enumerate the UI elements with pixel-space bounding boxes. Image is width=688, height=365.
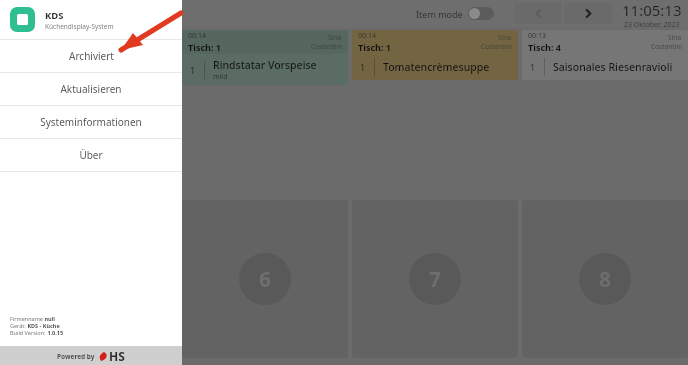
staticText: Aktualisieren	[60, 82, 122, 96]
staticText: Costantini	[311, 42, 342, 51]
staticText: Rindstatar Vorspeise	[213, 58, 317, 72]
staticText: Firmenname	[10, 315, 43, 322]
staticText: 1	[360, 61, 366, 73]
button[interactable]: Aktualisieren	[0, 73, 182, 105]
staticText: 8	[599, 265, 612, 294]
staticText: 1	[530, 61, 536, 73]
button[interactable]: Über	[0, 139, 182, 171]
staticText: 00:14	[188, 31, 206, 41]
button[interactable]: Next	[564, 3, 612, 24]
staticText: mild	[213, 72, 228, 82]
staticText: HS	[109, 348, 125, 364]
staticText: 1.0.15	[46, 329, 64, 336]
staticText: Tisch: 4	[528, 41, 561, 53]
staticText: KDS - Küche	[26, 322, 60, 329]
staticText: Systeminformationen	[40, 115, 142, 129]
button[interactable]: 00:14	[352, 30, 518, 195]
button[interactable]: 00:13	[522, 30, 688, 195]
staticText: 1	[190, 64, 196, 76]
staticText: Costantini	[481, 42, 512, 51]
staticText: 11:05:13	[622, 0, 682, 20]
staticText: Über	[79, 148, 103, 162]
staticText: Tisch: 1	[358, 41, 391, 53]
staticText: 00:14	[358, 31, 376, 41]
button[interactable]: Archiviert	[0, 40, 182, 72]
button[interactable]: Systeminformationen	[0, 106, 182, 138]
staticText: 00:13	[528, 31, 546, 41]
staticText: Tomatencrèmesuppe	[383, 60, 490, 74]
staticText: Powered by	[57, 352, 95, 361]
staticText: 6	[259, 265, 272, 294]
staticText: Küchendisplay-System	[45, 22, 114, 31]
staticText: null	[43, 315, 55, 322]
staticText: Siria	[328, 33, 342, 42]
button[interactable]: 00:14	[182, 30, 348, 195]
staticText: Costantini	[651, 42, 682, 51]
staticText: Siria	[498, 33, 512, 42]
button[interactable]: Item mode	[412, 7, 498, 20]
staticText: Siria	[668, 33, 682, 42]
staticText: Build Version:	[10, 329, 46, 336]
staticText: KDS	[45, 9, 64, 22]
staticText: Tisch: 1	[188, 41, 221, 53]
staticText: Item mode	[416, 8, 463, 20]
staticText: Gerät:	[10, 322, 26, 329]
staticText: 7	[429, 265, 442, 294]
staticText: 23 Oktober, 2023	[624, 20, 680, 27]
staticText: Archiviert	[69, 49, 114, 63]
staticText: Saisonales Riesenravioli	[553, 60, 673, 74]
